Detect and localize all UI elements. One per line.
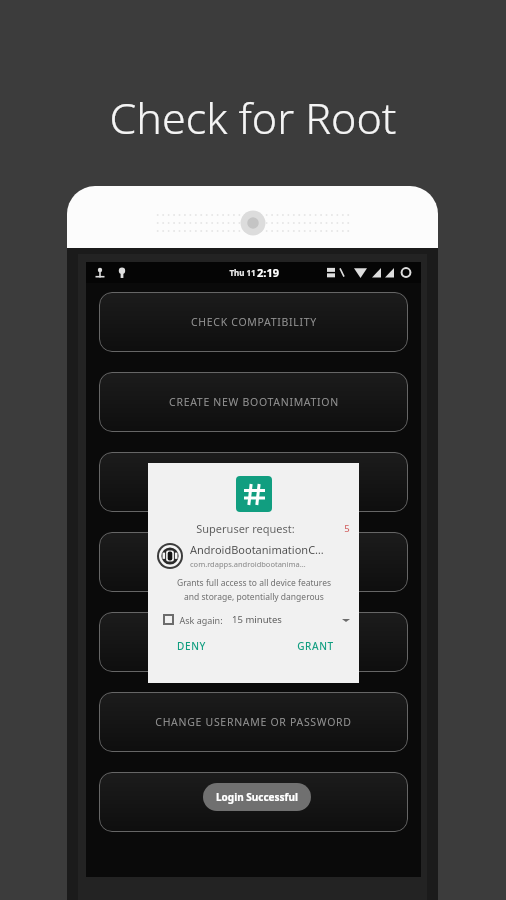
staticText: Grants full access to all device feature… [177,577,331,589]
button[interactable]: ABOUT ME [99,772,408,832]
staticText: Thu 11 [228,267,257,278]
staticText: Ask again: [179,614,223,626]
staticText: 5 [344,522,350,535]
staticText: DENY [177,639,206,653]
staticText: 15 minutes [232,613,282,626]
button[interactable]: GRANT [297,639,334,653]
staticText: and storage, potentially dangerous [184,591,324,603]
staticText: CREATE NEW BOOTANIMATION [169,395,339,409]
button[interactable]: DENY [177,639,206,653]
staticText: 2:19 [257,265,279,280]
staticText: com.rdapps.androidbootanima… [190,559,306,569]
staticText: Login Successful [216,790,298,804]
staticText: CHECK COMPATIBILITY [191,315,317,329]
button[interactable]: Login Successful [203,783,311,811]
button[interactable] [99,532,408,592]
staticText: CHANGE USERNAME OR PASSWORD [155,715,352,729]
button[interactable]: CHANGE USERNAME OR PASSWORD [99,692,408,752]
button[interactable]: Ask again checkbox [163,614,174,625]
staticText: Superuser request: [196,521,295,536]
button[interactable]: CHECK COMPATIBILITY [99,292,408,352]
staticText: ABOUT ME [224,795,283,809]
staticText: GRANT [297,639,334,653]
button[interactable]: CREATE NEW BOOTANIMATION [99,372,408,432]
staticText: Check for Root [0,88,506,147]
button[interactable]: Change duration [342,616,350,624]
button[interactable] [99,612,408,672]
button[interactable] [99,452,408,512]
staticText: AndroidBootanimationC… [190,542,324,557]
